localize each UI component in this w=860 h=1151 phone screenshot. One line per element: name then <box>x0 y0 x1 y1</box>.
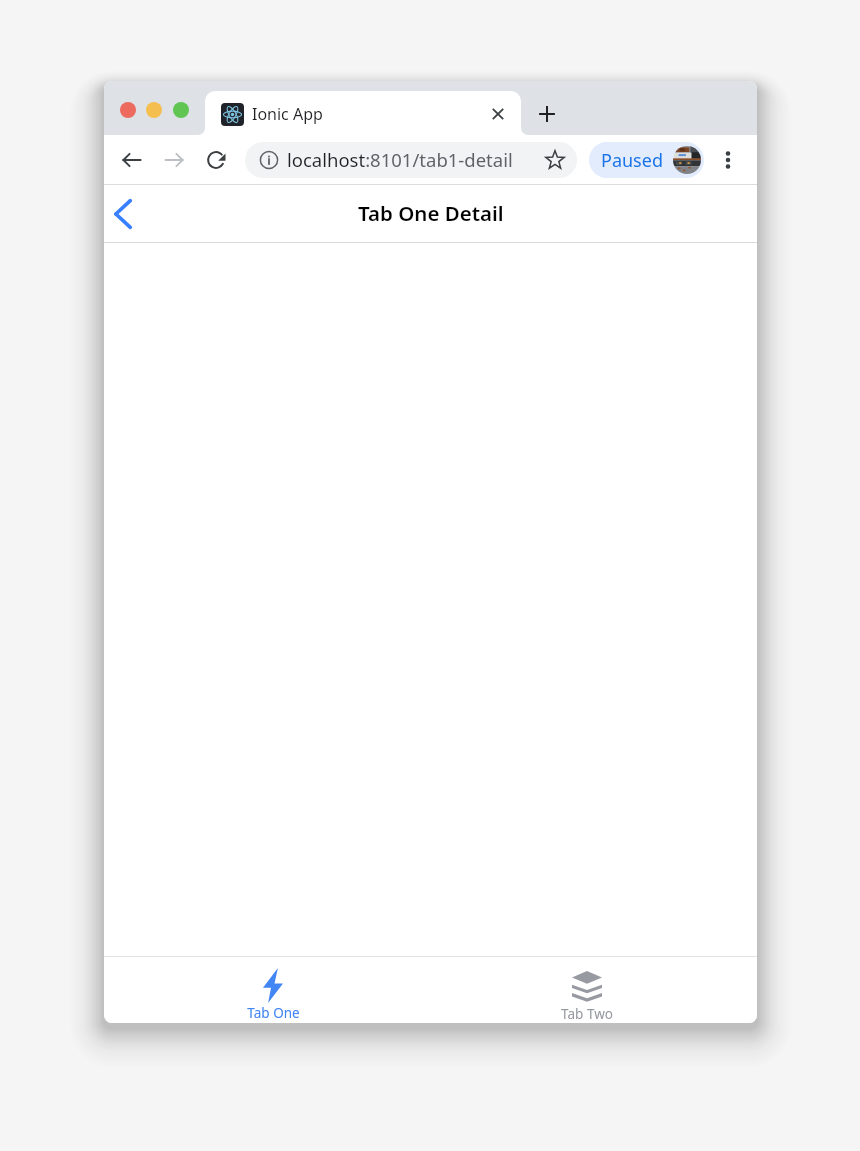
button[interactable]: New tab <box>534 101 560 127</box>
button[interactable]: Back <box>104 194 143 234</box>
staticText: Tab One <box>247 1004 300 1022</box>
button[interactable]: Tab Two <box>430 956 744 1023</box>
staticText: localhost:8101/tab1-detail <box>287 147 513 172</box>
button[interactable]: localhost:8101/tab1-detail <box>245 142 577 178</box>
button[interactable]: More options <box>716 148 740 172</box>
button[interactable]: Tab One <box>116 956 430 1023</box>
staticText: Tab Two <box>561 1005 613 1023</box>
button[interactable]: Forward <box>161 147 187 173</box>
staticText: Paused <box>601 148 663 173</box>
button[interactable]: Reload <box>204 148 228 172</box>
button[interactable]: Paused <box>589 142 704 178</box>
button[interactable]: Bookmark <box>542 147 568 173</box>
staticText: Ionic App <box>252 103 323 125</box>
staticText: Tab One Detail <box>358 199 504 227</box>
button[interactable]: Close tab <box>487 103 509 125</box>
button[interactable]: Back <box>119 147 145 173</box>
button[interactable]: Ionic App <box>198 91 528 135</box>
